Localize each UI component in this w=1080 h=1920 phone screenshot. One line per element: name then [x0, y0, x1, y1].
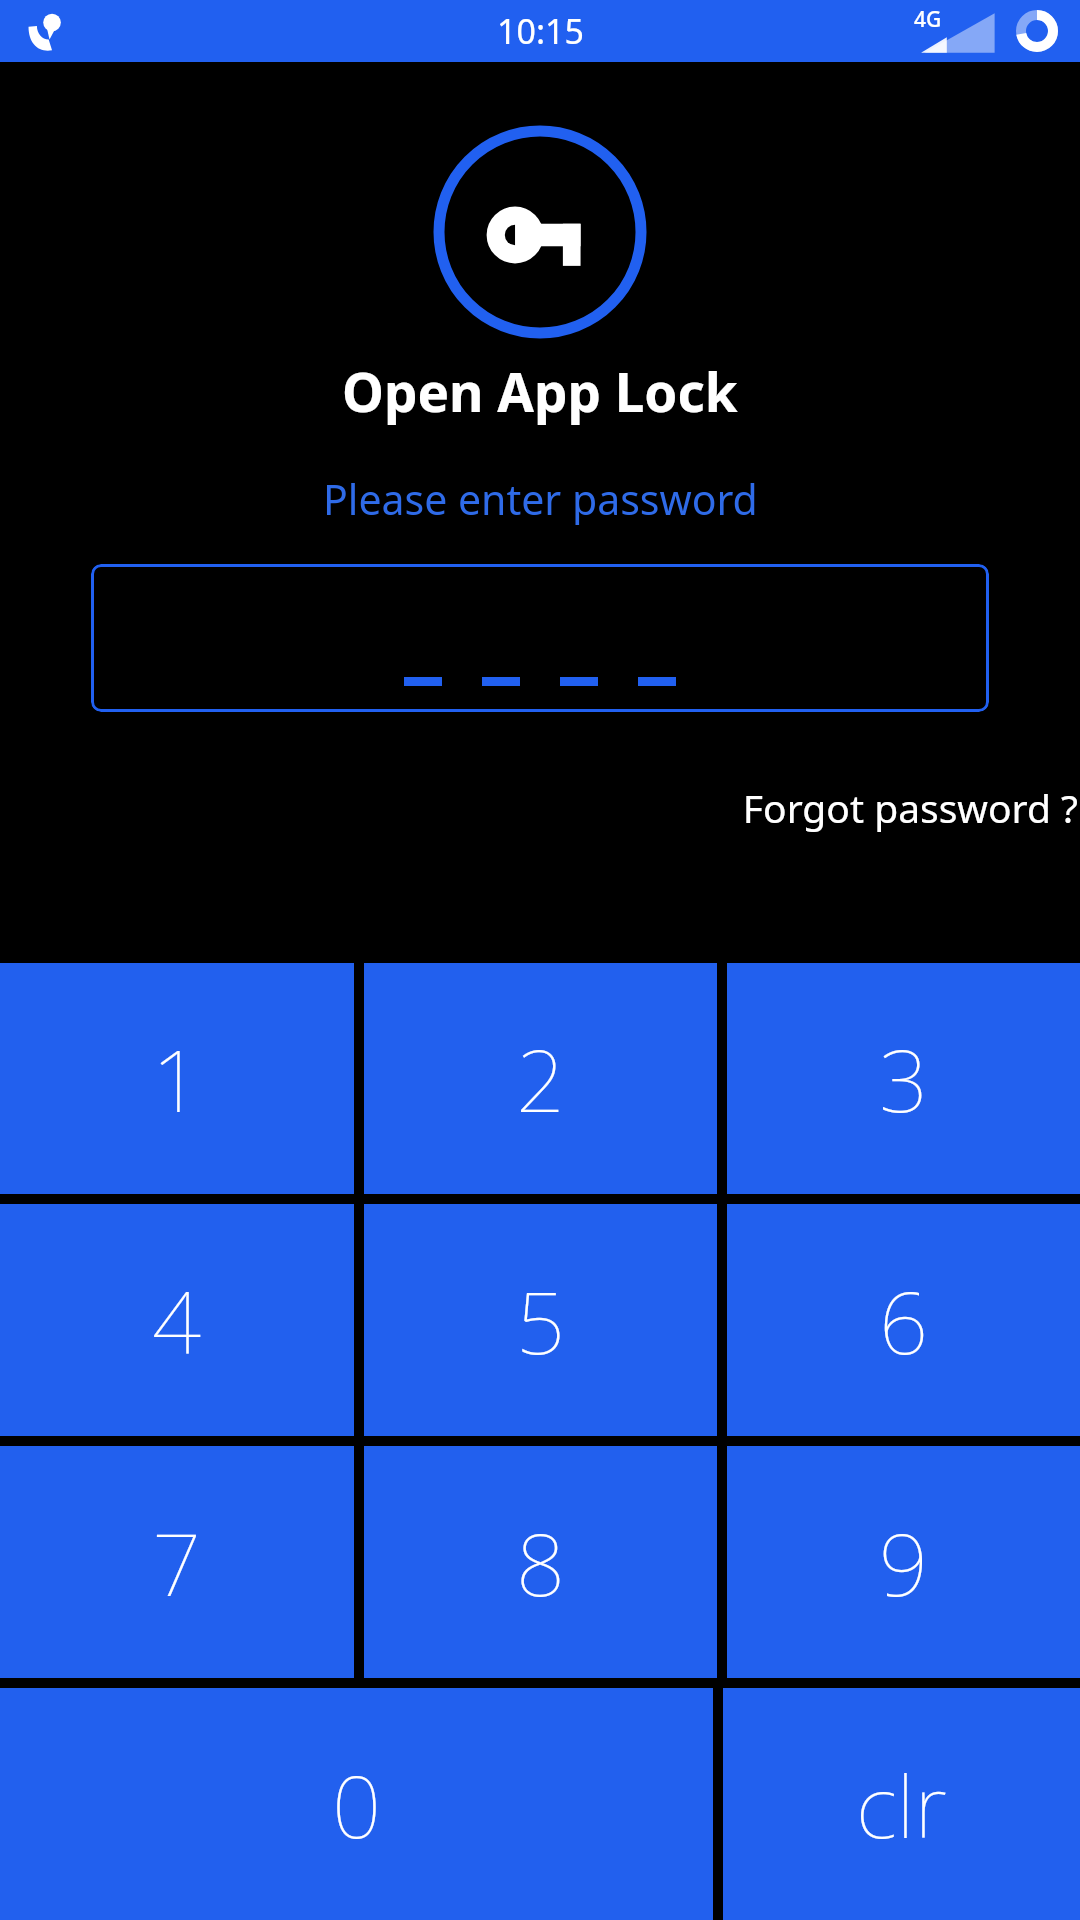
- staticText: 3: [879, 1020, 929, 1137]
- button[interactable]: 3: [727, 963, 1080, 1194]
- button[interactable]: 5: [364, 1204, 717, 1436]
- staticText: 1: [152, 1020, 202, 1137]
- button[interactable]: clr: [723, 1688, 1080, 1920]
- button[interactable]: 9: [727, 1446, 1080, 1678]
- staticText: 2: [516, 1020, 566, 1137]
- button[interactable]: 8: [364, 1446, 717, 1678]
- button[interactable]: 7: [0, 1446, 354, 1678]
- staticText: Open App Lock: [342, 355, 738, 427]
- staticText: 4: [152, 1262, 202, 1379]
- staticText: 5: [516, 1262, 566, 1379]
- staticText: 9: [879, 1504, 929, 1621]
- staticText: 10:15: [497, 8, 584, 54]
- staticText: clr: [856, 1746, 947, 1863]
- staticText: 8: [516, 1504, 566, 1621]
- staticText: 6: [879, 1262, 929, 1379]
- staticText: 4G: [914, 5, 942, 34]
- button[interactable]: Forgot password ?: [742, 781, 1078, 834]
- button[interactable]: 1: [0, 963, 354, 1194]
- staticText: 0: [332, 1746, 382, 1863]
- button[interactable]: 0: [0, 1688, 713, 1920]
- button[interactable]: [91, 564, 989, 712]
- button[interactable]: 2: [364, 963, 717, 1194]
- staticText: Forgot password ?: [742, 781, 1078, 834]
- staticText: 7: [152, 1504, 202, 1621]
- staticText: Please enter password: [323, 471, 758, 527]
- button[interactable]: 6: [727, 1204, 1080, 1436]
- button[interactable]: 4: [0, 1204, 354, 1436]
